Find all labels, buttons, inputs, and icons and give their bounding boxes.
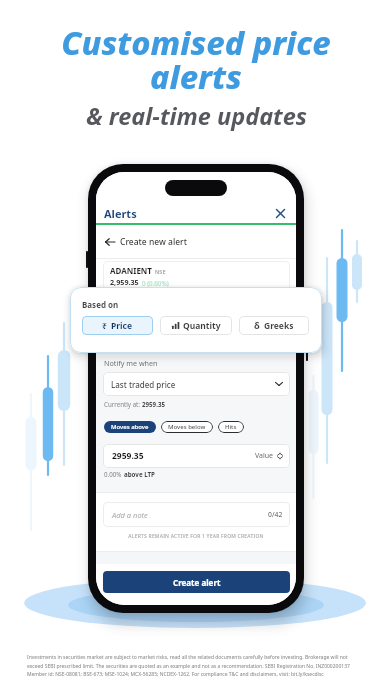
staticText: Price [111, 320, 133, 332]
staticText: Value [255, 451, 274, 461]
staticText: ₹ [102, 320, 107, 332]
staticText: Currently at: [104, 400, 142, 408]
button[interactable]: Hits [218, 421, 244, 433]
button[interactable]: Moves below [161, 421, 213, 433]
staticText: Investments in securities market are sub… [27, 654, 350, 677]
staticText: 0 (0.00%) [142, 279, 169, 287]
staticText: 0/42 [268, 510, 283, 519]
button[interactable]: δ [239, 316, 309, 335]
button[interactable]: Create new alert [96, 225, 296, 258]
staticText: 0.00% [104, 470, 122, 478]
button[interactable]: ADANIENT [103, 261, 290, 291]
button[interactable]: Add a note [103, 502, 290, 527]
staticText: Last traded price [111, 379, 176, 390]
staticText: Customised price alerts [61, 20, 331, 99]
button[interactable]: Create alert [103, 571, 290, 593]
staticText: Create alert [173, 577, 221, 588]
staticText: ALERTS REMAIN ACTIVE FOR 1 YEAR FROM CRE… [96, 533, 296, 540]
staticText: 2959.35 [142, 400, 165, 408]
staticText: Greeks [264, 320, 294, 332]
staticText: Create new alert [120, 236, 187, 248]
staticText: Moves below [168, 423, 206, 431]
button[interactable]: Close [272, 205, 288, 221]
staticText: Notify me when [104, 358, 158, 368]
button[interactable]: Moves above [104, 421, 156, 433]
button[interactable]: ₹ [82, 316, 153, 335]
staticText: Add a note [112, 510, 148, 520]
staticText: Quantity [183, 320, 221, 332]
staticText: Alerts [104, 206, 137, 221]
staticText: NSE [155, 268, 166, 276]
staticText: Hits [225, 423, 237, 431]
staticText: δ [254, 319, 260, 332]
button[interactable]: Quantity [160, 316, 232, 335]
staticText: 2,959.35 [110, 277, 139, 287]
staticText: Based on [82, 299, 119, 310]
staticText: & real-time updates [86, 100, 307, 132]
staticText: above LTP [124, 470, 155, 478]
staticText: 2959.35 [112, 450, 144, 462]
staticText: ADANIENT [110, 265, 152, 276]
button[interactable]: 2959.35 [103, 444, 290, 468]
button[interactable]: Last traded price [103, 372, 290, 396]
staticText: Moves above [111, 423, 149, 431]
